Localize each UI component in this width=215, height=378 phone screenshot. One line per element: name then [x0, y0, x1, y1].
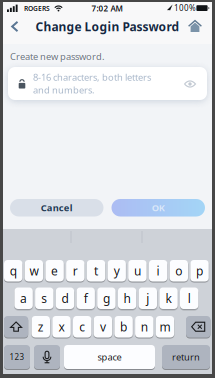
button[interactable]: d	[56, 287, 74, 309]
button[interactable]: g	[97, 287, 116, 309]
staticText: and numbers.	[33, 84, 95, 96]
staticText: u	[134, 263, 141, 279]
staticText: s	[41, 290, 47, 306]
button[interactable]: f	[76, 287, 95, 309]
staticText: e	[51, 263, 58, 279]
button[interactable]: return	[162, 345, 210, 369]
staticText: o	[175, 263, 182, 279]
button[interactable]: Dictate	[34, 345, 60, 369]
button[interactable]: w	[25, 260, 43, 281]
staticText: f	[84, 290, 88, 306]
staticText: 100%	[174, 3, 196, 13]
button[interactable]: Show password	[184, 80, 195, 87]
staticText: ROGERS	[24, 4, 50, 13]
button[interactable]: New password	[8, 67, 207, 100]
button[interactable]: m	[156, 316, 174, 337]
staticText: h	[124, 290, 131, 306]
button[interactable]: i	[149, 260, 167, 281]
button[interactable]: x	[52, 316, 71, 337]
staticText: 8-16 characters, both letters	[33, 71, 151, 83]
staticText: w	[29, 263, 38, 279]
staticText: a	[20, 290, 27, 306]
staticText: x	[58, 319, 64, 335]
button[interactable]: Back	[11, 21, 19, 32]
button[interactable]: j	[139, 287, 157, 309]
button[interactable]: 123	[4, 345, 30, 369]
staticText: k	[165, 290, 171, 306]
button[interactable]: OK	[111, 199, 205, 216]
staticText: i	[157, 263, 160, 279]
staticText: j	[146, 290, 149, 306]
button[interactable]: s	[35, 287, 53, 309]
staticText: 123	[9, 352, 24, 362]
button[interactable]: Cancel	[10, 199, 103, 216]
button[interactable]: o	[170, 260, 188, 281]
button[interactable]: q	[4, 260, 22, 281]
button[interactable]: y	[107, 260, 126, 281]
button[interactable]: Shift	[4, 316, 28, 337]
staticText: Create new password.	[10, 50, 105, 63]
staticText: r	[73, 263, 78, 279]
staticText: 7:02 AM	[91, 3, 122, 14]
button[interactable]: p	[190, 260, 209, 281]
button[interactable]: n	[135, 316, 153, 337]
staticText: space	[97, 351, 121, 363]
staticText: q	[10, 263, 17, 279]
staticText: m	[159, 319, 170, 335]
staticText: v	[100, 319, 106, 335]
staticText: Change Login Password	[35, 18, 179, 34]
button[interactable]: v	[94, 316, 112, 337]
staticText: g	[103, 290, 110, 306]
staticText: b	[120, 319, 127, 335]
button[interactable]: Home	[188, 20, 202, 32]
staticText: y	[114, 263, 120, 279]
staticText: t	[94, 263, 98, 279]
staticText: d	[61, 290, 68, 306]
staticText: p	[196, 263, 203, 279]
button[interactable]: t	[87, 260, 105, 281]
staticText: z	[38, 319, 44, 335]
button[interactable]: h	[118, 287, 136, 309]
staticText: return	[172, 351, 200, 363]
staticText: OK	[152, 202, 165, 214]
button[interactable]: b	[114, 316, 133, 337]
button[interactable]: u	[128, 260, 147, 281]
button[interactable]: z	[32, 316, 50, 337]
staticText: c	[79, 319, 85, 335]
button[interactable]: Delete	[186, 316, 210, 337]
button[interactable]: l	[180, 287, 198, 309]
button[interactable]: c	[73, 316, 91, 337]
staticText: l	[188, 290, 191, 306]
button[interactable]: space	[64, 345, 155, 369]
staticText: Cancel	[41, 202, 73, 214]
button[interactable]: a	[14, 287, 33, 309]
button[interactable]: e	[45, 260, 64, 281]
button[interactable]: k	[159, 287, 178, 309]
staticText: n	[141, 319, 148, 335]
button[interactable]: r	[66, 260, 84, 281]
